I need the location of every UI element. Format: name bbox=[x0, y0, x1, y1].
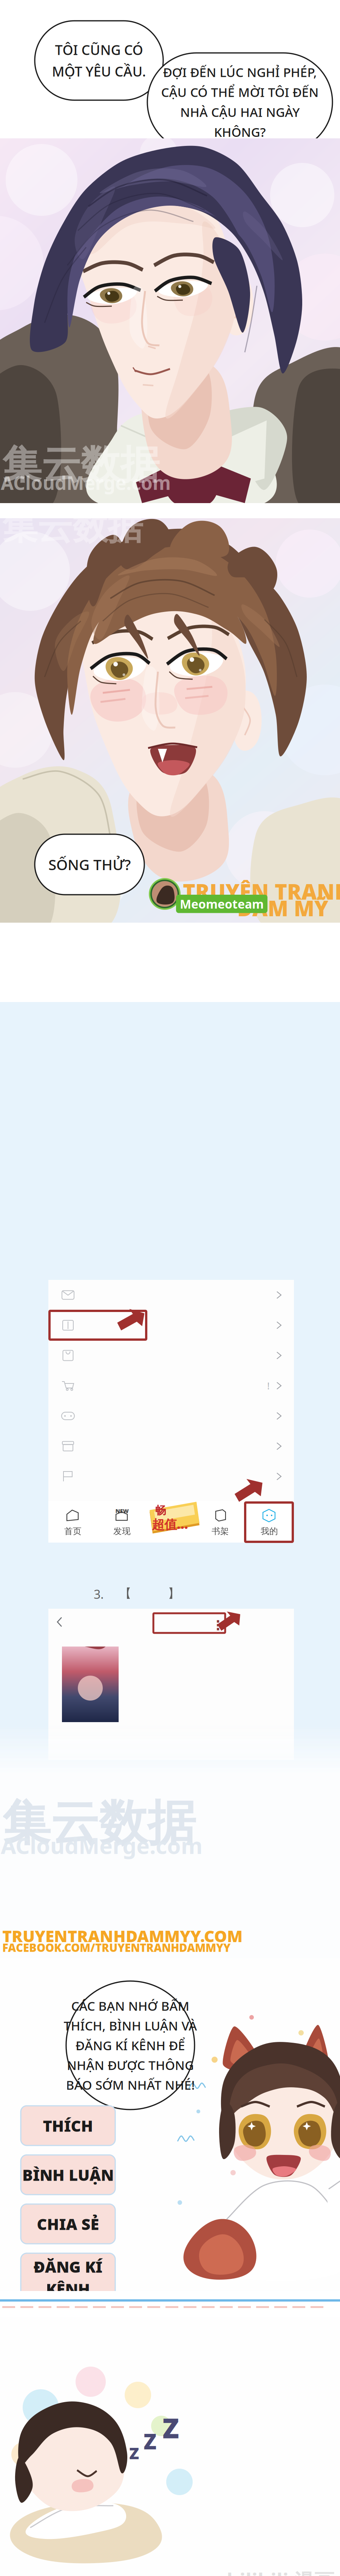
staticText: ĐỢI ĐẾN LÚC NGHỈ PHÉP, bbox=[163, 64, 317, 81]
staticText: ĐĂNG KÍ bbox=[34, 2256, 102, 2277]
staticText: ! bbox=[267, 1379, 270, 1392]
staticText: NHÀ CẬU HAI NGÀY bbox=[180, 104, 300, 120]
button[interactable] bbox=[48, 1310, 294, 1340]
staticText: 畅 bbox=[155, 1504, 166, 1517]
staticText: Z bbox=[144, 2427, 156, 2455]
staticText: ACloudMerge.com bbox=[1, 470, 171, 495]
staticText: ĐĂNG KÍ KÊNH ĐỂ bbox=[76, 2037, 185, 2054]
staticText: bilibili 漫画 bbox=[227, 2567, 334, 2576]
staticText: FACEBOOK.COM/TRUYENTRANHDAMMYY bbox=[2, 1940, 230, 1955]
staticText: ĐAM MỸ bbox=[237, 894, 328, 922]
staticText: TRUYENTRANHDAMMYY.COM bbox=[2, 1925, 243, 1947]
staticText: 【 bbox=[119, 1586, 131, 1601]
staticText: BÌNH LUẬN bbox=[22, 2164, 114, 2185]
staticText: Z bbox=[129, 2442, 139, 2464]
staticText: 集云数据 bbox=[2, 1794, 196, 1853]
staticText: TÔI CŨNG CÓ bbox=[55, 41, 143, 59]
staticText: CÁC BẠN NHỚ BẤM bbox=[71, 1997, 189, 2014]
staticText: ACloudMerge.com bbox=[1, 1831, 202, 1860]
button[interactable]: Back bbox=[48, 1609, 71, 1635]
staticText: 我的 bbox=[261, 1526, 278, 1536]
staticText: NHẬN ĐƯỢC THÔNG bbox=[67, 2057, 194, 2073]
staticText: 发现 bbox=[113, 1526, 131, 1536]
staticText: CẬU CÓ THỂ MỜI TÔI ĐẾN bbox=[161, 84, 319, 100]
staticText: TRUYỆN TRANH bbox=[183, 877, 340, 905]
button[interactable]: NEW bbox=[97, 1501, 147, 1543]
staticText: 3. bbox=[94, 1586, 104, 1602]
staticText: SỐNG THỬ? bbox=[48, 855, 131, 874]
button[interactable]: BÌNH LUẬN bbox=[21, 2155, 115, 2195]
button[interactable]: 首页 bbox=[48, 1501, 97, 1543]
staticText: Meomeoteam bbox=[180, 896, 264, 912]
staticText: Z bbox=[162, 2410, 179, 2446]
staticText: BÁO SỚM NHẤT NHÉ! bbox=[66, 2076, 195, 2093]
button[interactable] bbox=[48, 1401, 294, 1431]
button[interactable]: THÍCH bbox=[21, 2106, 115, 2145]
staticText: MỘT YÊU CẦU. bbox=[52, 62, 146, 80]
staticText: 首页 bbox=[64, 1526, 82, 1536]
button[interactable]: CHIA SẺ bbox=[21, 2204, 115, 2244]
button[interactable]: 畅 bbox=[147, 1502, 203, 1541]
button[interactable] bbox=[48, 1431, 294, 1461]
button[interactable]: 书架 bbox=[196, 1501, 245, 1543]
button[interactable] bbox=[48, 1461, 294, 1492]
button[interactable] bbox=[48, 1340, 294, 1371]
staticText: 集云数据 bbox=[2, 441, 159, 489]
staticText: 书架 bbox=[212, 1526, 229, 1536]
staticText: NEW bbox=[115, 1507, 129, 1515]
staticText: 】 bbox=[168, 1586, 180, 1601]
button[interactable]: ĐĂNG KÍ bbox=[21, 2253, 115, 2302]
staticText: ⋮ bbox=[212, 1618, 225, 1633]
staticText: CHIA SẺ bbox=[37, 2214, 99, 2234]
staticText: THÍCH, BÌNH LUẬN VÀ bbox=[64, 2017, 197, 2034]
staticText: KÊNH bbox=[46, 2279, 90, 2299]
staticText: THÍCH bbox=[43, 2115, 93, 2136]
staticText: 集云数据 bbox=[2, 505, 143, 549]
button[interactable] bbox=[48, 1280, 294, 1310]
button[interactable]: 我的 bbox=[245, 1501, 294, 1543]
button[interactable]: ! bbox=[48, 1371, 294, 1401]
staticText: 超值卡券 bbox=[152, 1516, 197, 1532]
staticText: KHÔNG? bbox=[214, 124, 266, 140]
